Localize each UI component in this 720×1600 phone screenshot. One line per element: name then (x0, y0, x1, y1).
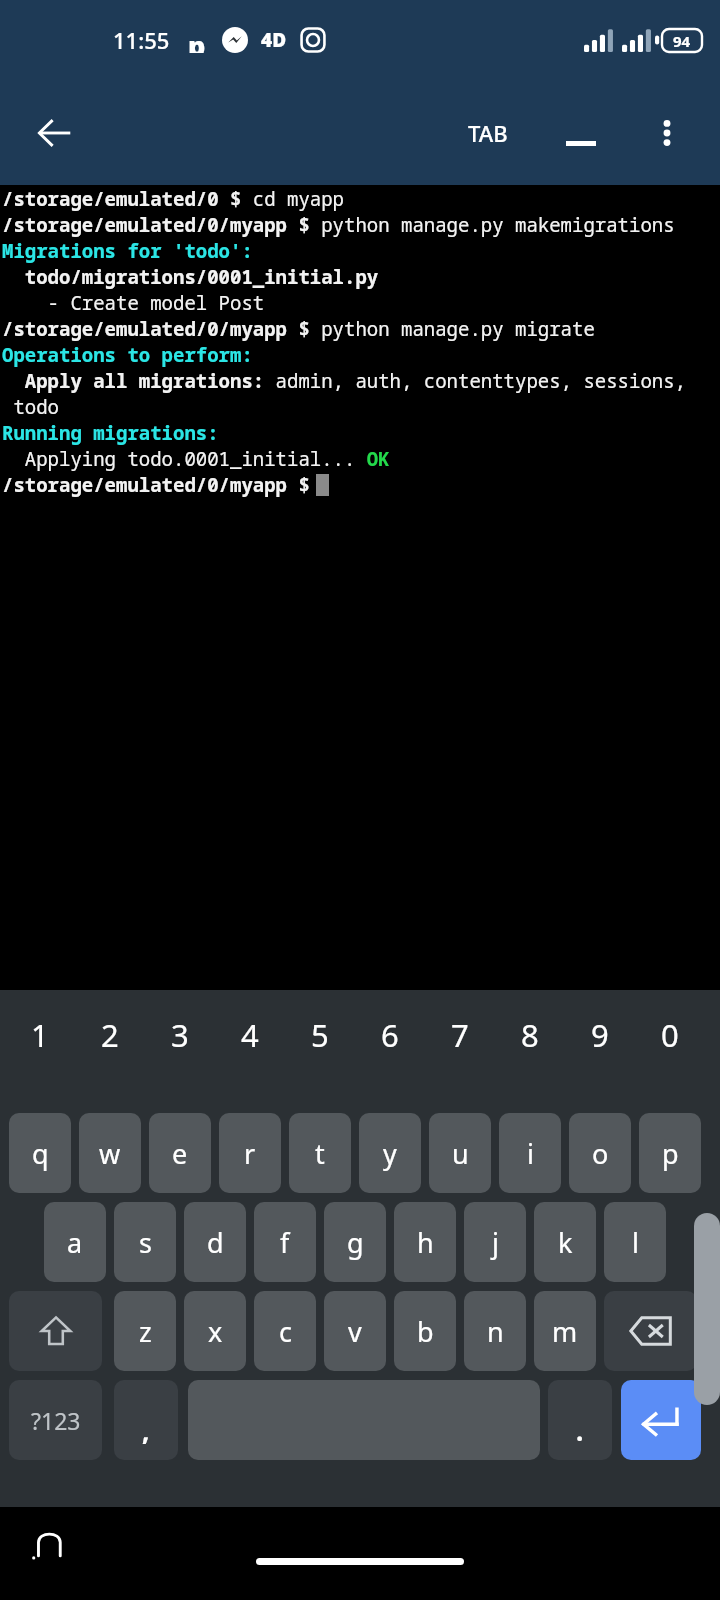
button[interactable]: q (9, 1113, 71, 1193)
staticText: Running migrations: (2, 420, 219, 446)
button[interactable]: k (534, 1202, 596, 1282)
staticText: j (492, 1224, 499, 1261)
staticText: l (632, 1224, 639, 1261)
staticText: Migrations for 'todo': (2, 238, 253, 264)
staticText: , (142, 1413, 150, 1448)
button[interactable]: j (464, 1202, 526, 1282)
button[interactable]: 5 (288, 1004, 352, 1066)
button[interactable]: z (114, 1291, 176, 1371)
staticText: TAB (468, 118, 508, 148)
staticText: 1 (31, 1014, 49, 1056)
button[interactable]: 2 (78, 1004, 142, 1066)
button[interactable]: Symbols (9, 1380, 102, 1460)
button[interactable]: c (254, 1291, 316, 1371)
button[interactable]: /storage/emulated/0 $ cd myapp (0, 185, 720, 985)
staticText: /storage/emulated/0/myapp $ (2, 472, 322, 498)
button[interactable]: u (429, 1113, 491, 1193)
button[interactable]: y (359, 1113, 421, 1193)
button[interactable]: 6 (358, 1004, 422, 1066)
button[interactable]: t (289, 1113, 351, 1193)
button[interactable]: r (219, 1113, 281, 1193)
staticText: todo/migrations/0001_initial.py (2, 264, 379, 290)
staticText: g (347, 1224, 364, 1261)
button[interactable]: h (394, 1202, 456, 1282)
staticText: Applying todo.0001_initial... OK (2, 446, 390, 472)
button[interactable]: Resize keyboard (694, 1213, 720, 1405)
staticText: . (576, 1413, 584, 1448)
staticText: - Create model Post (2, 290, 265, 316)
button[interactable]: l (604, 1202, 666, 1282)
button[interactable]: Hide keyboard (16, 1513, 80, 1577)
staticText: e (172, 1135, 188, 1172)
button[interactable]: Underscore key (548, 98, 614, 168)
staticText: f (280, 1224, 290, 1261)
staticText: y (383, 1135, 397, 1172)
button[interactable]: e (149, 1113, 211, 1193)
staticText: /storage/emulated/0 $ cd myapp (2, 186, 345, 212)
staticText: /storage/emulated/0/myapp $ python manag… (2, 316, 595, 342)
staticText: Operations to perform: (2, 342, 253, 368)
staticText: x (208, 1313, 223, 1350)
staticText: p (188, 27, 206, 53)
staticText: s (139, 1224, 152, 1261)
button[interactable]: 7 (428, 1004, 492, 1066)
staticText: todo (2, 394, 60, 420)
staticText: r (244, 1135, 256, 1172)
staticText: w (99, 1135, 121, 1172)
staticText: u (452, 1135, 469, 1172)
button[interactable]: 0 (638, 1004, 702, 1066)
staticText: c (279, 1313, 292, 1350)
button[interactable]: Backspace (604, 1291, 697, 1371)
button[interactable]: g (324, 1202, 386, 1282)
staticText: n (487, 1313, 504, 1350)
staticText: b (417, 1313, 434, 1350)
staticText: z (139, 1313, 152, 1350)
staticText: d (207, 1224, 224, 1261)
button[interactable]: w (79, 1113, 141, 1193)
button[interactable]: v (324, 1291, 386, 1371)
staticText: p (662, 1135, 679, 1172)
button[interactable]: x (184, 1291, 246, 1371)
button[interactable]: b (394, 1291, 456, 1371)
button[interactable]: 4 (218, 1004, 282, 1066)
staticText: i (527, 1135, 534, 1172)
staticText: o (592, 1135, 609, 1172)
staticText: Apply all migrations: admin, auth, conte… (2, 368, 687, 394)
staticText: 4 (241, 1014, 259, 1056)
button[interactable]: p (639, 1113, 701, 1193)
staticText: 11:55 (113, 25, 170, 55)
button[interactable]: 1 (8, 1004, 72, 1066)
button[interactable]: n (464, 1291, 526, 1371)
button[interactable]: o (569, 1113, 631, 1193)
button[interactable]: 8 (498, 1004, 562, 1066)
button[interactable]: 9 (568, 1004, 632, 1066)
staticText: h (417, 1224, 434, 1261)
staticText: t (315, 1135, 325, 1172)
button[interactable]: s (114, 1202, 176, 1282)
button[interactable]: TAB (452, 98, 524, 168)
button[interactable]: More options (636, 102, 698, 164)
staticText: 94 (673, 31, 691, 51)
button[interactable]: m (534, 1291, 596, 1371)
staticText: /storage/emulated/0/myapp $ python manag… (2, 212, 675, 238)
button[interactable]: f (254, 1202, 316, 1282)
staticText: 6 (381, 1014, 399, 1056)
staticText: 2 (101, 1014, 119, 1056)
button[interactable]: Back (24, 102, 86, 164)
staticText: m (552, 1313, 578, 1350)
button[interactable]: a (44, 1202, 106, 1282)
button[interactable]: i (499, 1113, 561, 1193)
staticText: 9 (591, 1014, 609, 1056)
button[interactable]: d (184, 1202, 246, 1282)
staticText: ?123 (31, 1405, 81, 1436)
button[interactable]: Comma (114, 1380, 178, 1460)
staticText: k (558, 1224, 573, 1261)
button[interactable]: Enter (621, 1380, 701, 1460)
staticText: 5 (311, 1014, 329, 1056)
staticText: q (32, 1135, 49, 1172)
button[interactable]: Period (548, 1380, 612, 1460)
button[interactable]: 3 (148, 1004, 212, 1066)
staticText: 7 (451, 1014, 469, 1056)
button[interactable]: Shift (9, 1291, 102, 1371)
